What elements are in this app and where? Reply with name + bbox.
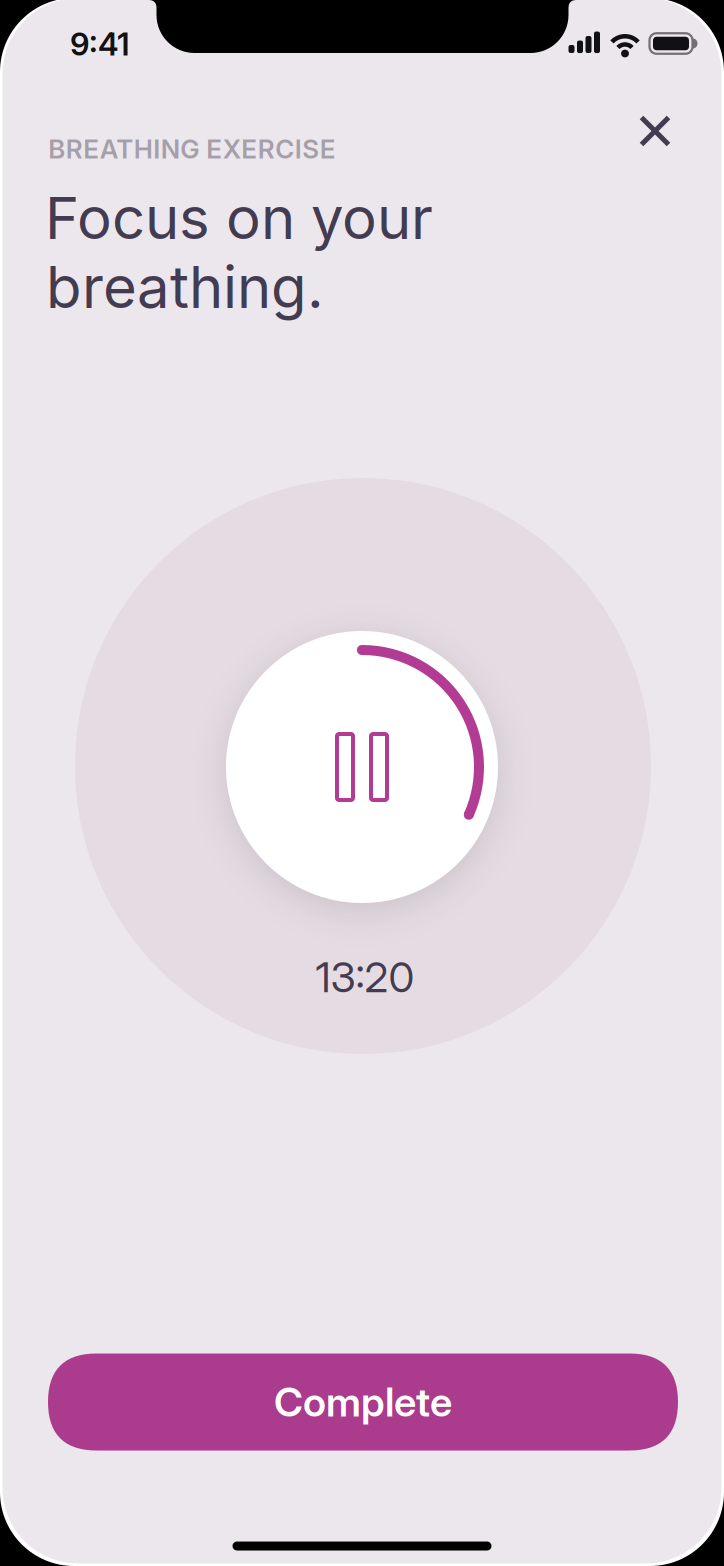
staticText: BREATHING EXERCISE <box>48 133 336 165</box>
button[interactable]: Close <box>627 103 682 158</box>
staticText: Complete <box>274 1378 452 1426</box>
button[interactable]: Pause <box>226 631 498 903</box>
staticText: 9:41 <box>70 25 130 63</box>
button[interactable]: Complete <box>48 1353 678 1450</box>
staticText: breathing. <box>46 252 324 322</box>
staticText: 13:20 <box>315 952 414 1002</box>
staticText: Focus on your <box>45 183 433 253</box>
